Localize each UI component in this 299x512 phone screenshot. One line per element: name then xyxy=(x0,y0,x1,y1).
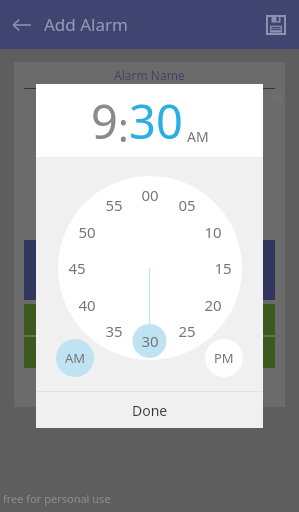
staticText: 55 xyxy=(105,195,123,215)
staticText: 50 xyxy=(78,222,96,242)
button[interactable]: 10 xyxy=(197,216,229,248)
button[interactable]: Done xyxy=(36,392,263,428)
staticText: 00 xyxy=(141,185,159,205)
staticText: PM xyxy=(214,349,234,367)
staticText: AM xyxy=(65,349,86,367)
button[interactable]: 45 xyxy=(61,252,93,284)
button[interactable]: PM xyxy=(205,339,243,377)
button[interactable]: AM xyxy=(187,127,209,146)
staticText: 25 xyxy=(178,321,196,341)
staticText: Done xyxy=(132,401,168,420)
button[interactable]: Save xyxy=(253,0,299,49)
staticText: Alarm Name xyxy=(114,67,185,83)
button[interactable]: 00 xyxy=(134,179,166,211)
button[interactable]: 25 xyxy=(171,315,203,347)
button[interactable]: Back xyxy=(0,0,44,49)
button[interactable]: 35 xyxy=(98,315,130,347)
button[interactable]: 05 xyxy=(171,189,203,221)
staticText: 45 xyxy=(68,258,86,278)
staticText: 05 xyxy=(178,195,196,215)
staticText: free for personal use xyxy=(3,491,111,506)
staticText: 30 xyxy=(141,331,159,351)
button[interactable]: 30 xyxy=(129,89,183,153)
button[interactable] xyxy=(58,176,242,360)
staticText: Add Alarm xyxy=(44,13,128,36)
staticText: 35 xyxy=(105,321,123,341)
button[interactable]: 15 xyxy=(207,252,239,284)
staticText: 20 xyxy=(204,295,222,315)
staticText: 40 xyxy=(78,295,96,315)
button[interactable]: 55 xyxy=(98,189,130,221)
button[interactable]: 40 xyxy=(71,289,103,321)
button[interactable]: AM xyxy=(56,339,94,377)
staticText: : xyxy=(118,99,129,153)
button[interactable]: 30 xyxy=(134,325,166,357)
button[interactable]: 50 xyxy=(71,216,103,248)
staticText: 30 xyxy=(271,90,283,104)
button[interactable]: 9 xyxy=(91,89,118,153)
staticText: 15 xyxy=(214,258,232,278)
staticText: 10 xyxy=(204,222,222,242)
button[interactable]: 20 xyxy=(197,289,229,321)
